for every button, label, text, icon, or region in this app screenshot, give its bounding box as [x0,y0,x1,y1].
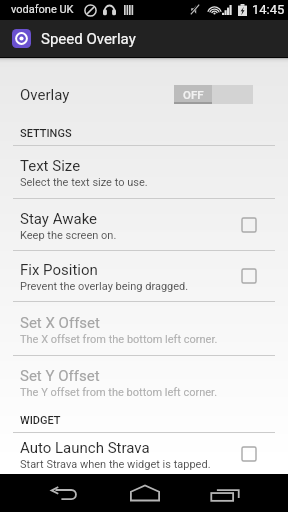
staticText: Start Strava when the widget is tapped. [20,458,211,471]
staticText: Fix Position [20,261,98,279]
button[interactable]: OFF [174,85,253,104]
staticText: Auto Launch Strava [20,439,150,457]
button[interactable]: Set X Offset [0,302,288,355]
staticText: Speed Overlay [41,30,136,48]
button[interactable]: Back [32,474,96,512]
button[interactable]: Home [112,474,176,512]
button[interactable]: Fix Position [0,251,288,301]
staticText: vodafone UK [11,3,74,16]
button[interactable]: Recent apps [192,474,256,512]
staticText: Set X Offset [20,314,100,332]
staticText: The Y offset from the bottom left corner… [20,386,218,399]
staticText: WIDGET [20,414,61,427]
button[interactable]: Overlay [0,58,288,120]
staticText: The X offset from the bottom left corner… [20,333,218,346]
staticText: OFF [183,88,204,101]
staticText: Text Size [20,157,81,175]
staticText: Stay Awake [20,210,98,228]
staticText: 14:45 [252,2,285,17]
staticText: Overlay [20,86,70,104]
staticText: SETTINGS [20,127,72,140]
button[interactable]: Auto Launch Strava [0,433,288,474]
staticText: Set Y Offset [20,367,100,385]
button[interactable]: Stay Awake [0,199,288,250]
staticText: Keep the screen on. [20,229,117,242]
button[interactable]: Text Size [0,146,288,198]
staticText: Prevent the overlay being dragged. [20,280,189,293]
button[interactable]: Set Y Offset [0,356,288,407]
staticText: Select the text size to use. [20,176,148,189]
